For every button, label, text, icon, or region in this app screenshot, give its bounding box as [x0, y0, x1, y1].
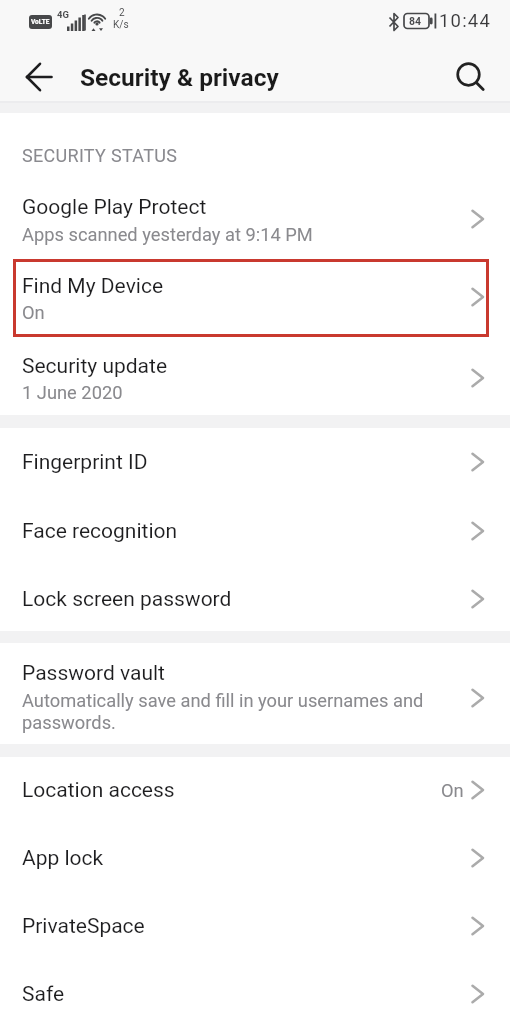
- staticText: 10:44: [439, 10, 492, 32]
- staticText: App lock: [22, 846, 104, 871]
- staticText: Password vault: [22, 661, 165, 686]
- staticText: 1 June 2020: [22, 382, 123, 403]
- button[interactable]: Lock screen password: [0, 564, 510, 632]
- staticText: On: [22, 302, 45, 323]
- button[interactable]: Safe: [0, 960, 510, 1024]
- staticText: PrivateSpace: [22, 914, 145, 939]
- button[interactable]: Location access: [0, 757, 510, 824]
- staticText: Security & privacy: [80, 63, 279, 92]
- staticText: SECURITY STATUS: [22, 145, 178, 166]
- staticText: Safe: [22, 982, 65, 1007]
- staticText: Apps scanned yesterday at 9:14 PM: [22, 224, 313, 245]
- staticText: passwords.: [22, 712, 116, 733]
- staticText: 84: [409, 15, 422, 27]
- staticText: Google Play Protect: [22, 195, 207, 220]
- staticText: K/s: [113, 19, 129, 31]
- staticText: Fingerprint ID: [22, 450, 148, 475]
- staticText: 2: [119, 7, 125, 19]
- staticText: Find My Device: [22, 274, 164, 299]
- button[interactable]: Password vault: [0, 643, 510, 744]
- button[interactable]: App lock: [0, 824, 510, 892]
- button[interactable]: Security update: [0, 340, 510, 415]
- button[interactable]: [446, 52, 494, 100]
- staticText: Automatically save and fill in your user…: [22, 690, 424, 711]
- button[interactable]: [16, 54, 64, 100]
- button[interactable]: Fingerprint ID: [0, 428, 510, 496]
- button[interactable]: Google Play Protect: [0, 180, 510, 256]
- button[interactable]: Face recognition: [0, 496, 510, 564]
- staticText: Face recognition: [22, 519, 178, 544]
- staticText: Security update: [22, 354, 168, 379]
- button[interactable]: PrivateSpace: [0, 892, 510, 960]
- staticText: VoLTE: [31, 18, 50, 26]
- staticText: On: [441, 780, 464, 801]
- button[interactable]: Find My Device: [0, 256, 510, 340]
- staticText: Lock screen password: [22, 587, 232, 612]
- staticText: Location access: [22, 778, 175, 803]
- staticText: 4G: [57, 9, 69, 20]
